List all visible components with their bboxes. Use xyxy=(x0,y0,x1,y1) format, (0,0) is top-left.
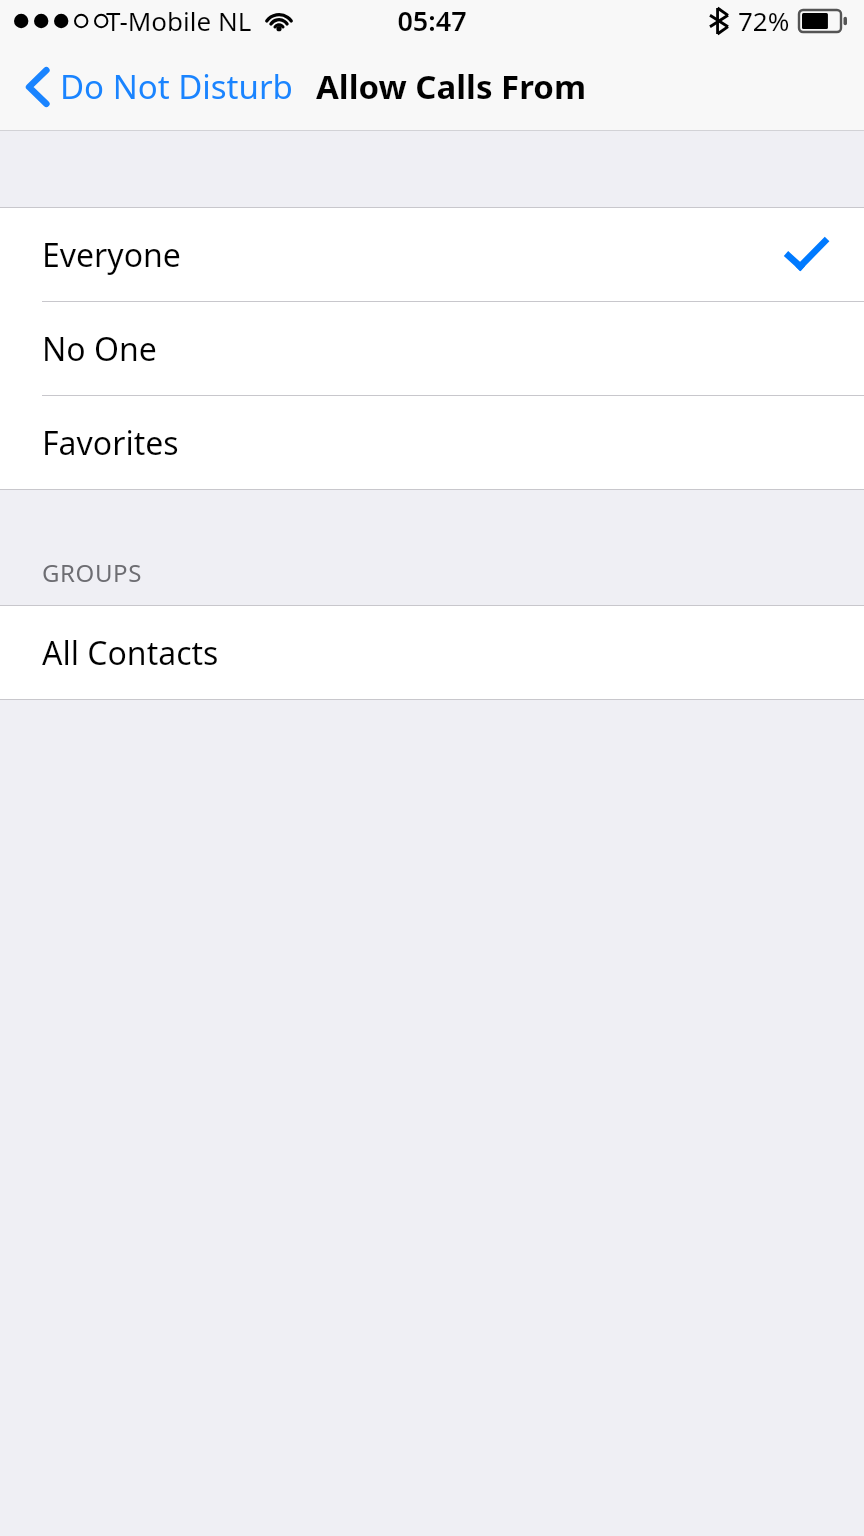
button[interactable]: Back to Do Not Disturb xyxy=(0,58,301,115)
button[interactable]: Everyone xyxy=(0,208,864,302)
staticText: GROUPS xyxy=(42,556,142,589)
staticText: 72% xyxy=(738,3,790,38)
button[interactable]: Favorites xyxy=(0,396,864,489)
button[interactable]: No One xyxy=(0,302,864,396)
staticText: T-Mobile NL xyxy=(106,3,252,38)
staticText: Favorites xyxy=(42,421,179,465)
button[interactable]: All Contacts xyxy=(0,606,864,699)
staticText: Do Not Disturb xyxy=(60,64,293,109)
staticText: No One xyxy=(42,327,157,371)
other: Back to Do Not Disturb xyxy=(24,67,52,107)
staticText: Allow Calls From xyxy=(316,64,587,109)
staticText: All Contacts xyxy=(42,631,219,675)
staticText: 05:47 xyxy=(397,2,467,39)
staticText: Everyone xyxy=(42,233,181,277)
